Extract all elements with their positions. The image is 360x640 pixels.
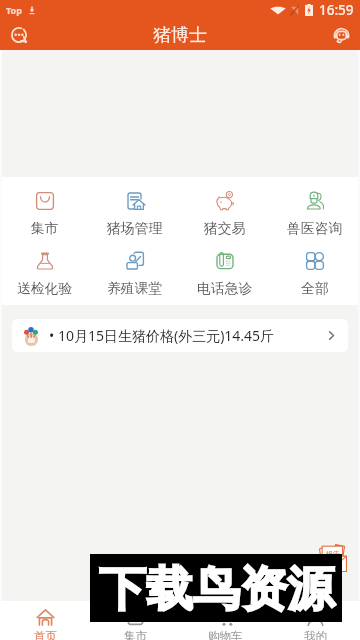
staticText: Top [6, 4, 22, 16]
button[interactable]: 猪场管理 [90, 191, 180, 237]
button[interactable]: 集市 [90, 601, 180, 640]
button[interactable]: 养殖课堂 [90, 251, 180, 297]
staticText: 猪场管理 [107, 220, 163, 237]
button[interactable]: 全部 [270, 251, 360, 297]
staticText: 猪交易 [204, 220, 246, 237]
staticText: 兽医咨询 [287, 220, 343, 237]
staticText: 全部 [301, 280, 329, 297]
staticText: 电话急诊 [197, 280, 253, 297]
staticText: 集市 [124, 629, 147, 640]
button[interactable]: 集市 [0, 191, 90, 237]
button[interactable]: 购物车 [180, 601, 270, 640]
staticText: 送检化验 [17, 280, 73, 297]
staticText: 下载鸟资源 [99, 560, 334, 619]
staticText: 16:59 [319, 1, 354, 19]
staticText: 购物车 [208, 629, 243, 640]
button[interactable]: Messages [6, 22, 32, 48]
button[interactable]: 电话急诊 [180, 251, 270, 297]
staticText: 养殖课堂 [107, 280, 163, 297]
button[interactable]: • 10月15日生猪价格(外三元)14.45斤 [12, 319, 348, 352]
button[interactable]: 我的 [270, 601, 360, 640]
button[interactable]: 送检化验 [0, 251, 90, 297]
button[interactable]: Customer service [328, 22, 354, 48]
staticText: 我的 [304, 629, 327, 640]
button[interactable]: 兽医咨询 [270, 191, 360, 237]
staticText: • 10月15日生猪价格(外三元)14.45斤 [49, 326, 275, 345]
button[interactable]: Report [317, 542, 349, 574]
staticText: 首页 [34, 629, 57, 640]
button[interactable]: 猪交易 [180, 191, 270, 237]
staticText: 报告 [326, 549, 340, 558]
button[interactable]: 首页 [0, 601, 90, 640]
staticText: 猪博士 [153, 24, 207, 47]
staticText: 集市 [31, 220, 59, 237]
